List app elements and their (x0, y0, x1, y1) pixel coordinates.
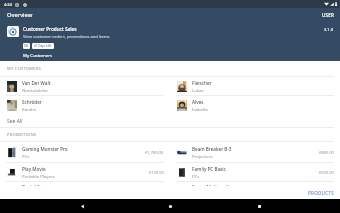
staticText: Van Der Walt (22, 80, 51, 86)
button[interactable]: Schröder (0, 96, 170, 114)
button[interactable]: USER (316, 9, 340, 21)
staticText: €500.00 (319, 170, 334, 175)
staticText: PCs (22, 153, 30, 159)
button[interactable]: Alves (170, 96, 340, 114)
staticText: €1,700.00 (145, 150, 164, 155)
staticText: Customer Product Sales (23, 26, 77, 32)
button[interactable]: Smart Multimedia (170, 182, 340, 198)
button[interactable]: Play Movie (0, 163, 170, 181)
staticText: Gaming Monster Pro (22, 146, 68, 152)
button[interactable]: Basic Ultra (0, 182, 170, 198)
button[interactable]: See All (0, 115, 340, 127)
staticText: €620.00 (319, 188, 334, 193)
staticText: PCs (192, 173, 200, 179)
staticText: Basic Ultra (22, 184, 46, 190)
staticText: Karolin (22, 106, 37, 112)
staticText: 41 Days Left (34, 44, 52, 48)
staticText: Play Movie (22, 166, 46, 172)
staticText: My Customers (23, 52, 53, 58)
button[interactable]: Recent apps (252, 199, 266, 213)
staticText: View customer orders, promotions and ite… (23, 34, 110, 40)
staticText: Portable Players (22, 173, 55, 179)
staticText: Schröder (22, 99, 42, 105)
staticText: Nonkululeko (22, 87, 48, 93)
staticText: Beam Breaker B-3 (192, 146, 232, 152)
button[interactable]: PRODUCTS (302, 187, 340, 199)
staticText: PRODUCTS (308, 190, 334, 196)
staticText: USER (322, 12, 334, 18)
button[interactable]: Back (75, 199, 89, 213)
staticText: 3.1.0 (324, 27, 334, 32)
staticText: Isabella (192, 106, 208, 112)
staticText: Overview (7, 11, 33, 19)
staticText: Fleischer (192, 80, 212, 86)
button[interactable]: Beam Breaker B-3 (170, 142, 340, 162)
staticText: 4:34 (4, 2, 12, 7)
staticText: MY CUSTOMERS (7, 66, 41, 71)
button[interactable]: Fleischer (170, 77, 340, 95)
staticText: €130.00 (149, 170, 164, 175)
button[interactable]: Family PC Basic (170, 163, 340, 181)
staticText: Projectors (192, 153, 213, 159)
button[interactable]: Van Der Walt (0, 77, 170, 95)
button[interactable]: Gaming Monster Pro (0, 142, 170, 162)
button[interactable]: Home (163, 199, 177, 213)
staticText: See All (7, 118, 23, 125)
staticText: Alves (192, 99, 204, 105)
staticText: Lukas (192, 87, 204, 93)
staticText: PROMOTIONS (7, 132, 37, 137)
staticText: Family PC Basic (192, 166, 226, 172)
staticText: €885.00 (319, 150, 334, 155)
staticText: Smart Multimedia (192, 184, 232, 190)
staticText: DB (24, 44, 29, 48)
